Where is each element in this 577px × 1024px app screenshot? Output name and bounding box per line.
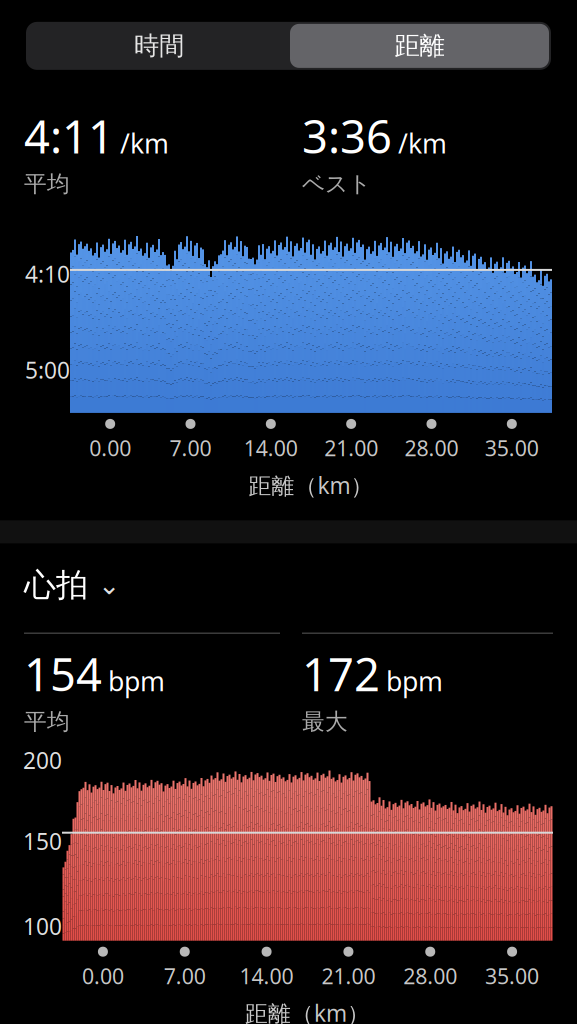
staticText: 5:00 [25,355,70,385]
staticText: 平均 [24,170,70,198]
staticText: 4:10 [25,259,70,289]
staticText: 3:36 [302,106,392,166]
staticText: 7.00 [169,434,211,462]
staticText: 時間 [134,30,184,61]
staticText: 150 [23,826,62,856]
staticText: bpm [108,663,165,699]
staticText: 最大 [302,708,348,736]
button[interactable]: 心拍 [0,543,120,605]
staticText: 35.00 [485,962,539,990]
button[interactable]: 時間 [28,24,290,68]
staticText: ⌄ [98,570,120,600]
staticText: 21.00 [321,962,375,990]
staticText: 14.00 [240,962,294,990]
staticText: 4:11 [24,106,114,166]
staticText: 21.00 [324,434,378,462]
staticText: 距離 [394,30,444,61]
staticText: 154 [24,644,102,704]
staticText: 28.00 [404,434,458,462]
staticText: /km [398,125,447,161]
staticText: bpm [386,663,443,699]
staticText: 0.00 [89,434,131,462]
staticText: 7.00 [164,962,206,990]
button[interactable]: 距離 [290,24,549,68]
staticText: 172 [302,644,380,704]
staticText: 平均 [24,708,70,736]
staticText: ベスト [302,170,371,198]
staticText: 100 [23,911,62,941]
staticText: 距離（km） [248,470,373,500]
staticText: 28.00 [403,962,457,990]
staticText: 距離（km） [245,998,370,1024]
staticText: 0.00 [82,962,124,990]
staticText: 35.00 [485,434,539,462]
staticText: /km [120,125,169,161]
staticText: 心拍 [24,565,88,605]
staticText: 14.00 [244,434,298,462]
staticText: 200 [23,745,62,775]
